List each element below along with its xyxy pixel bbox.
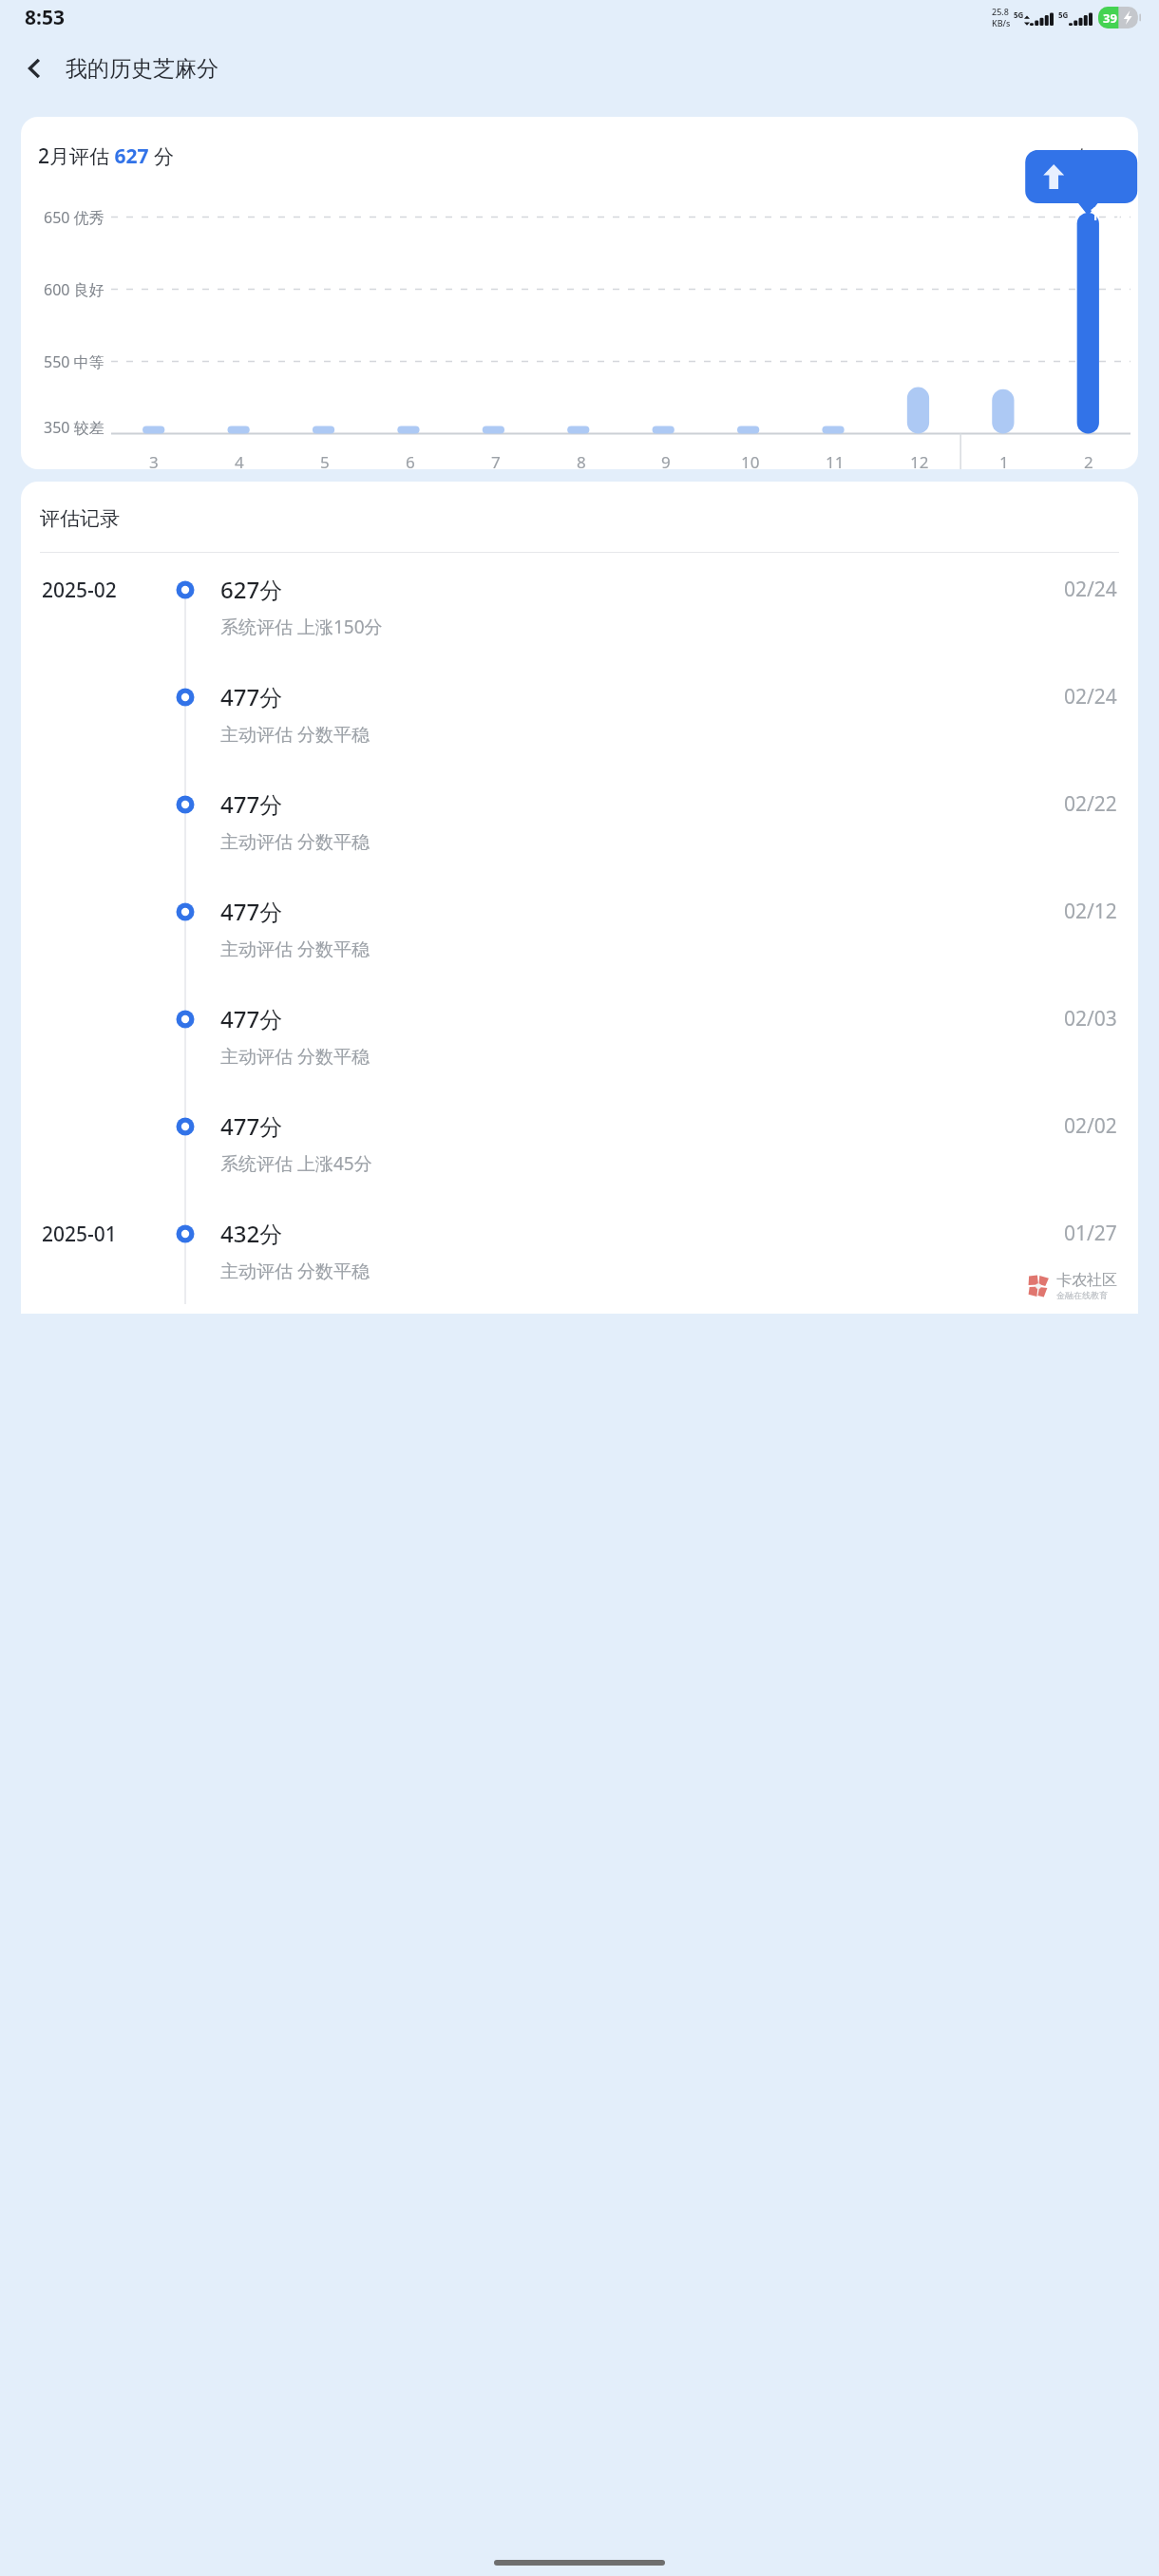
staticText: 02/02 [1064,1112,1117,1140]
staticText: 我的历史芝麻分 [66,55,218,83]
staticText: 627分 [220,574,283,605]
button[interactable]: 477分 [21,982,1138,1089]
staticText: 02/24 [1064,683,1117,710]
staticText: 3 [149,451,159,469]
staticText: 650 优秀 [44,207,104,228]
staticText: 主动评估 分数平稳 [220,1259,370,1283]
staticText: 9 [661,451,671,469]
button[interactable]: 2025-02 [21,553,1138,660]
staticText: 25.8 [992,6,1009,17]
staticText: 卡农社区 [1056,1271,1117,1290]
staticText: 5G [1014,9,1024,20]
staticText: 7 [491,451,501,469]
staticText: 550 中等 [44,351,104,372]
staticText: 477分 [220,896,283,927]
staticText: KB/s [992,17,1011,28]
staticText: 4 [235,451,244,469]
staticText: 477分 [220,788,283,820]
staticText: 2025-01 [42,1221,117,1248]
staticText: 432分 [220,1218,283,1249]
staticText: 金融在线教育 [1056,1290,1108,1300]
staticText: 12 [910,451,929,469]
button[interactable]: 477分 [21,875,1138,982]
staticText: 系统评估 上涨150分 [220,615,383,639]
staticText: 350 较差 [44,417,104,438]
staticText: 2025年 [1033,143,1095,169]
staticText: 10 [741,451,760,469]
button[interactable]: 2025年 [1029,140,1121,173]
staticText: 主动评估 分数平稳 [220,829,370,854]
staticText: 2025-02 [42,577,117,604]
staticText: 02/24 [1064,576,1117,603]
staticText: 8 [577,451,586,469]
staticText: 477分 [220,1110,283,1142]
staticText: 39 [1103,9,1117,27]
staticText: 评估记录 [40,506,120,531]
staticText: 477分 [220,1003,283,1034]
button[interactable]: 2025-01 [21,1197,1138,1304]
staticText: 2 [1084,451,1093,469]
staticText: 195 [1090,201,1121,226]
staticText: 2月评估 627 分 [38,142,174,170]
staticText: 主动评估 分数平稳 [220,722,370,747]
staticText: 5 [320,451,330,469]
staticText: 477分 [220,681,283,712]
staticText: 02/12 [1064,898,1117,925]
staticText: 6 [406,451,415,469]
staticText: 11 [826,451,845,469]
staticText: 02/03 [1064,1005,1117,1032]
staticText: 1 [999,451,1009,469]
staticText: 01/27 [1064,1220,1117,1247]
staticText: 8:53 [25,4,65,31]
button[interactable]: 477分 [21,660,1138,767]
staticText: 系统评估 上涨45分 [220,1151,372,1176]
staticText: 主动评估 分数平稳 [220,1044,370,1069]
button[interactable]: 477分 [21,767,1138,875]
staticText: 02/22 [1064,790,1117,818]
staticText: 5G [1058,9,1069,20]
staticText: 主动评估 分数平稳 [220,937,370,961]
button[interactable]: Back [12,46,58,91]
staticText: 600 良好 [44,279,104,300]
button[interactable]: 477分 [21,1089,1138,1197]
